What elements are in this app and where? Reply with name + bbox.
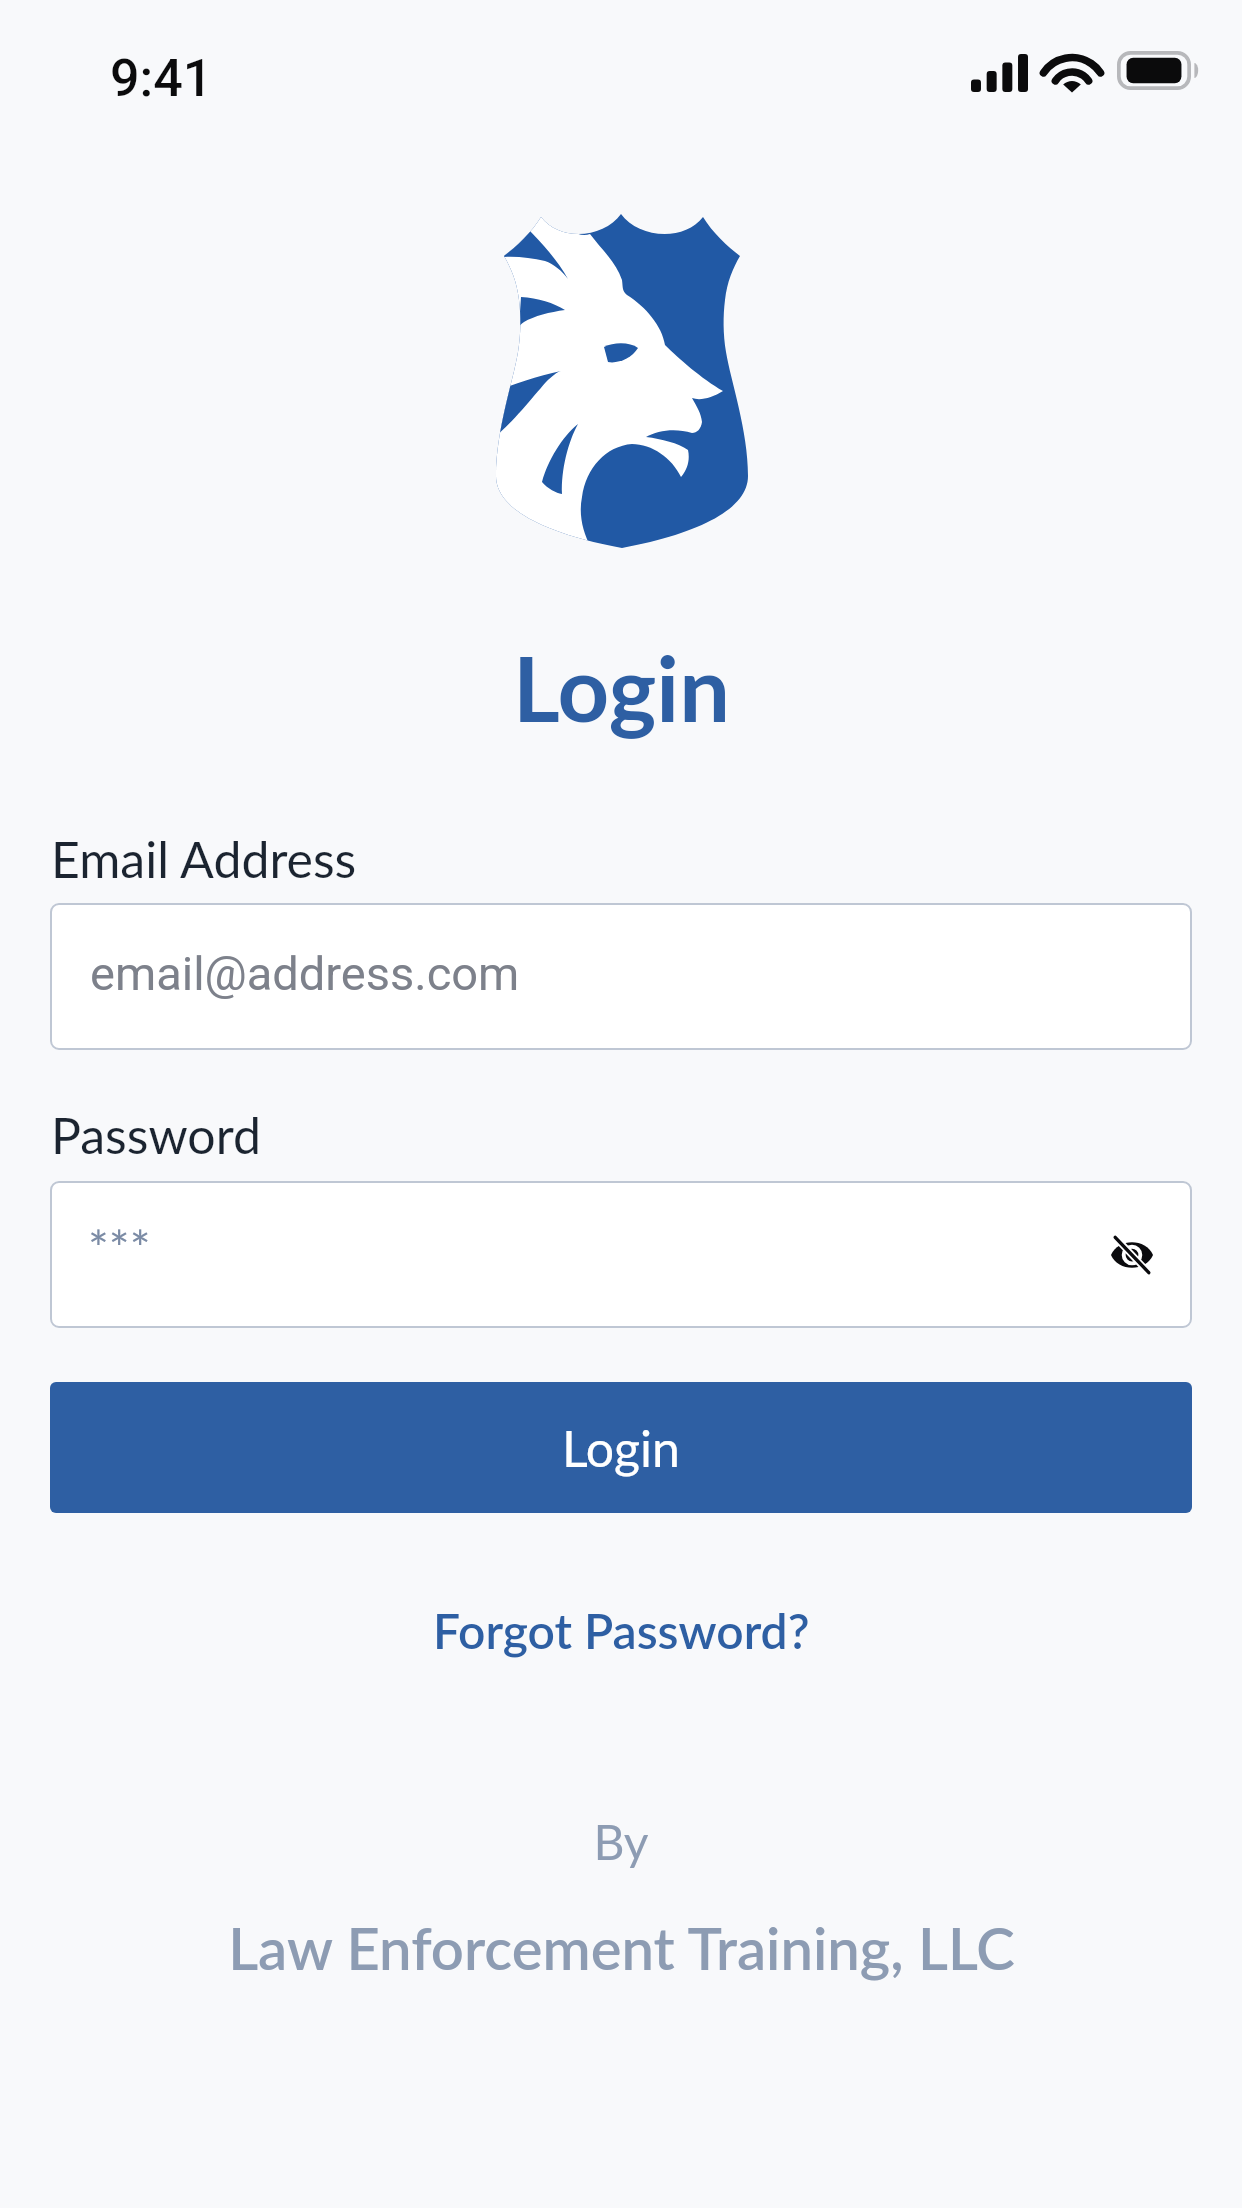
staticText: Password: [51, 1105, 261, 1165]
staticText: email@address.com: [90, 946, 520, 1001]
staticText: 9:41: [110, 48, 213, 109]
staticText: Law Enforcement Training, LLC: [228, 1913, 1015, 1983]
button[interactable]: email@address.com: [50, 903, 1192, 1050]
button[interactable]: Show password: [1092, 1215, 1172, 1295]
staticText: ***: [88, 1218, 151, 1277]
staticText: Login: [513, 633, 730, 741]
button[interactable]: ***: [50, 1181, 1192, 1328]
staticText: Forgot Password?: [433, 1602, 810, 1660]
staticText: By: [593, 1813, 649, 1871]
button[interactable]: Login: [50, 1382, 1192, 1513]
staticText: Email Address: [51, 829, 357, 889]
button[interactable]: Forgot Password?: [421, 1594, 822, 1668]
staticText: Login: [562, 1418, 680, 1478]
